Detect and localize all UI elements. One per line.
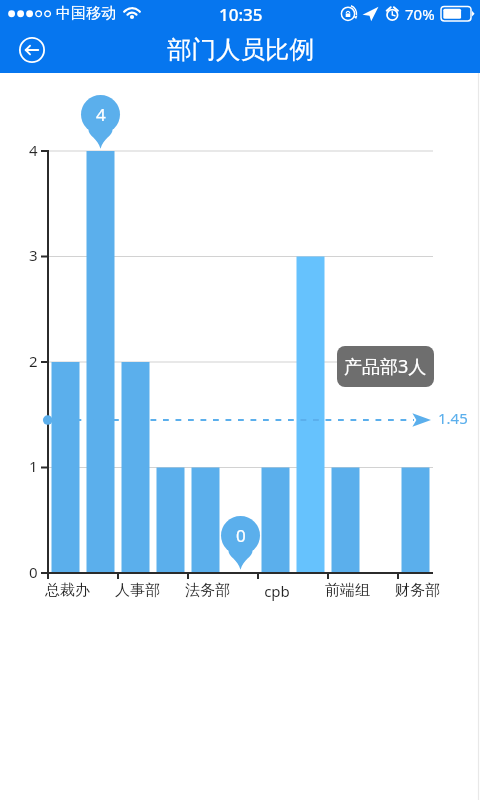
staticText: 0 [29, 562, 38, 582]
staticText: 70% [405, 4, 435, 24]
button[interactable]: 前端组 1 [188, 151, 223, 573]
staticText: 法务部 [185, 581, 230, 600]
button[interactable]: 人事部 4 [83, 151, 118, 573]
staticText: 4 [96, 103, 106, 126]
staticText: 财务部 [395, 581, 440, 600]
staticText: 1 [29, 456, 38, 476]
button[interactable]: 市场部 1 [258, 151, 293, 573]
button[interactable]: 产品部3人 [337, 346, 434, 387]
staticText: 1.45 [438, 408, 468, 428]
staticText: 10:35 [219, 3, 263, 26]
staticText: 4 [29, 140, 38, 160]
staticText: cpb [264, 581, 290, 601]
button[interactable]: 测试组 0 [363, 151, 398, 573]
staticText: 前端组 [325, 581, 370, 600]
staticText: 人事部 [115, 581, 160, 600]
staticText: 中国移动 [56, 4, 116, 23]
button[interactable]: Back [13, 31, 51, 69]
button[interactable]: 法务部 2 [118, 151, 153, 573]
staticText: 3 [29, 245, 38, 265]
button[interactable]: 财务部 0 [223, 151, 258, 573]
staticText: 2 [29, 351, 38, 371]
button[interactable]: 总裁办 2 [48, 151, 83, 573]
staticText: 部门人员比例 [167, 34, 314, 65]
button[interactable]: 产品部 3 [293, 151, 328, 573]
staticText: 总裁办 [45, 581, 90, 600]
staticText: 产品部3人 [344, 354, 427, 379]
button[interactable]: 运营部 1 [328, 151, 363, 573]
button[interactable]: cpb 1 [153, 151, 188, 573]
staticText: 0 [236, 524, 246, 547]
button[interactable]: 研发部 1 [398, 151, 433, 573]
